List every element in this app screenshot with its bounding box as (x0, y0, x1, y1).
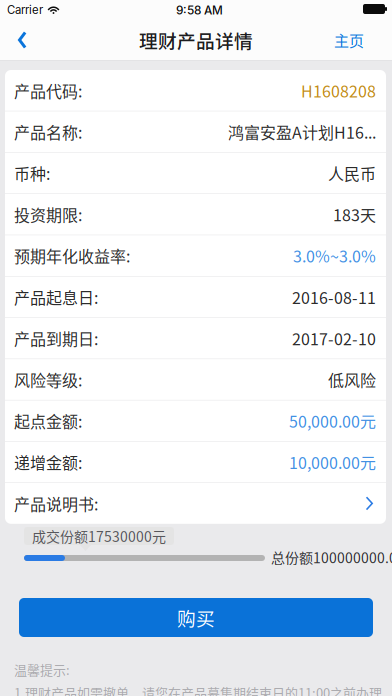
staticText: 2017-02-10 (292, 327, 376, 350)
staticText: 1.理财产品如需撤单，请您在产品募集期结束日的11:00之前办理 (14, 683, 382, 696)
staticText: H1608208 (301, 79, 376, 102)
staticText: 产品说明书: (14, 492, 98, 515)
staticText: 温馨提示: (14, 660, 70, 679)
button[interactable]: 主页 (320, 20, 392, 60)
staticText: 低风险 (328, 368, 376, 391)
staticText: 产品起息日: (14, 285, 98, 308)
staticText: 产品代码: (14, 79, 82, 102)
staticText: 人民币 (328, 161, 376, 185)
staticText: 鸿富安盈A计划H16... (228, 120, 376, 143)
staticText: 产品名称: (14, 120, 82, 143)
staticText: 购买 (177, 604, 215, 631)
staticText: 起点金额: (14, 409, 82, 432)
button[interactable]: Back (0, 20, 41, 60)
staticText: 递增金额: (14, 450, 82, 474)
staticText: 风险等级: (14, 368, 82, 391)
staticText: 产品到期日: (14, 327, 98, 350)
staticText: 183天 (333, 203, 376, 226)
staticText: 总份额100000000.00 (271, 547, 392, 567)
button[interactable]: 购买 (19, 598, 373, 637)
staticText: 3.0%~3.0% (293, 244, 376, 267)
staticText: 投资期限: (14, 203, 82, 226)
staticText: 预期年化收益率: (14, 244, 130, 267)
staticText: 50,000.00元 (289, 409, 376, 432)
staticText: 9:58 AM (176, 3, 223, 17)
staticText: 主页 (334, 29, 364, 51)
staticText: 10,000.00元 (289, 450, 376, 474)
staticText: 成交份额17530000元 (32, 526, 166, 546)
staticText: 2016-08-11 (292, 285, 376, 308)
staticText: 币种: (14, 161, 50, 185)
staticText: Carrier (7, 3, 43, 17)
button[interactable]: 产品说明书: (5, 483, 386, 524)
staticText: 理财产品详情 (139, 26, 253, 54)
